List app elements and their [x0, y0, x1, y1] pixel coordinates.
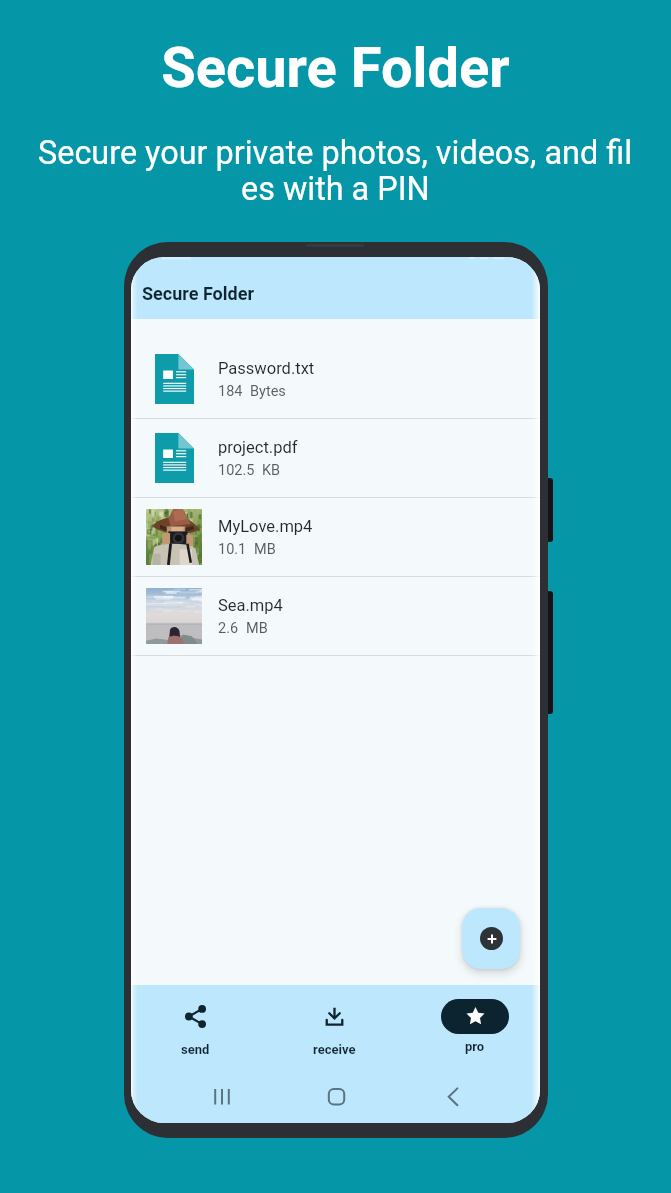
staticText: 102.5: [218, 462, 255, 479]
button[interactable]: MyLove.mp4: [131, 498, 540, 576]
other: Receive: [324, 1005, 345, 1028]
other: Send: [185, 1005, 206, 1028]
staticText: send: [181, 1042, 210, 1057]
staticText: 2.6: [218, 620, 239, 637]
staticText: Secure Folder: [161, 35, 510, 101]
staticText: MB: [254, 541, 276, 558]
staticText: Bytes: [250, 383, 286, 400]
button[interactable]: Receive: [279, 985, 389, 1065]
button[interactable]: project.pdf: [131, 419, 540, 497]
staticText: MB: [246, 620, 268, 637]
staticText: 184: [218, 383, 243, 400]
staticText: pro: [465, 1039, 485, 1054]
button[interactable]: Sea.mp4: [131, 577, 540, 655]
staticText: KB: [262, 462, 281, 479]
staticText: MyLove.mp4: [218, 517, 313, 536]
button[interactable]: Send: [140, 985, 250, 1065]
staticText: Password.txt: [218, 359, 315, 378]
staticText: 10.1: [218, 541, 247, 558]
staticText: receive: [313, 1042, 356, 1057]
button[interactable]: pro: [420, 985, 530, 1062]
button[interactable]: Add file: [462, 908, 520, 969]
staticText: es with a PIN: [241, 170, 430, 208]
staticText: project.pdf: [218, 438, 298, 457]
staticText: Secure Folder: [142, 283, 254, 304]
staticText: Sea.mp4: [218, 596, 283, 615]
button[interactable]: Password.txt: [131, 340, 540, 418]
staticText: Secure your private photos, videos, and …: [38, 134, 633, 172]
